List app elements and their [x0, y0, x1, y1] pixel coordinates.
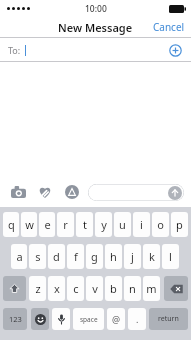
button[interactable]: e	[39, 212, 55, 237]
button[interactable]: Emoji	[31, 308, 49, 330]
button[interactable]: Backspace	[164, 276, 188, 301]
staticText: i	[140, 217, 143, 232]
staticText: e	[44, 217, 51, 232]
button[interactable]: y	[95, 212, 112, 237]
staticText: j	[131, 249, 134, 264]
button[interactable]: return	[149, 308, 188, 330]
button[interactable]: n	[124, 276, 141, 301]
staticText: return	[158, 314, 179, 324]
staticText: d	[53, 249, 60, 264]
button[interactable]: q	[3, 212, 19, 237]
staticText: l	[169, 249, 172, 264]
button[interactable]: Send	[88, 184, 184, 201]
button[interactable]: Dictation	[52, 308, 70, 330]
button[interactable]: t	[76, 212, 93, 237]
staticText: q	[8, 217, 15, 232]
staticText: u	[119, 217, 126, 232]
button[interactable]: g	[86, 244, 103, 269]
button[interactable]: Camera	[7, 181, 29, 203]
button[interactable]: u	[114, 212, 131, 237]
button[interactable]: z	[29, 276, 46, 301]
button[interactable]: c	[67, 276, 84, 301]
button[interactable]: f	[67, 244, 84, 269]
button[interactable]: i	[133, 212, 150, 237]
button[interactable]: b	[105, 276, 122, 301]
button[interactable]: r	[57, 212, 74, 237]
button[interactable]: Add contact	[165, 40, 185, 60]
button[interactable]: App Store	[61, 181, 83, 203]
staticText: New Message	[58, 20, 133, 35]
staticText: 123	[9, 314, 22, 324]
staticText: b	[110, 281, 117, 296]
button[interactable]: v	[86, 276, 103, 301]
button[interactable]: 123	[3, 308, 27, 330]
button[interactable]: Digital Touch	[34, 181, 56, 203]
staticText: w	[25, 217, 34, 232]
button[interactable]: x	[48, 276, 65, 301]
staticText: f	[74, 249, 78, 264]
staticText: r	[63, 217, 68, 232]
button[interactable]: Send	[168, 186, 182, 200]
button[interactable]: l	[162, 244, 179, 269]
staticText: g	[91, 249, 98, 264]
button[interactable]: h	[105, 244, 122, 269]
staticText: v	[92, 281, 98, 296]
button[interactable]: @	[107, 308, 125, 330]
staticText: n	[129, 281, 136, 296]
button[interactable]: Shift	[3, 276, 26, 301]
staticText: a	[16, 249, 23, 264]
button[interactable]: m	[143, 276, 160, 301]
staticText: @	[112, 313, 121, 325]
button[interactable]: p	[171, 212, 188, 237]
button[interactable]: k	[143, 244, 160, 269]
button[interactable]: w	[21, 212, 37, 237]
staticText: y	[101, 217, 107, 232]
staticText: s	[35, 249, 41, 264]
button[interactable]: space	[73, 308, 104, 330]
button[interactable]: Cancel	[147, 18, 191, 36]
staticText: k	[149, 249, 155, 264]
button[interactable]: a	[11, 244, 27, 269]
button[interactable]: .	[128, 308, 146, 330]
staticText: m	[146, 281, 157, 296]
staticText: c	[73, 281, 79, 296]
staticText: 10:00	[85, 3, 107, 15]
staticText: z	[35, 281, 41, 296]
button[interactable]: o	[152, 212, 169, 237]
staticText: o	[157, 217, 164, 232]
staticText: Cancel	[153, 20, 185, 34]
staticText: .	[136, 313, 139, 325]
staticText: p	[176, 217, 183, 232]
staticText: x	[54, 281, 60, 296]
staticText: space	[80, 315, 98, 324]
button[interactable]: s	[29, 244, 46, 269]
staticText: To:	[8, 44, 21, 56]
staticText: h	[110, 249, 117, 264]
button[interactable]: j	[124, 244, 141, 269]
button[interactable]: d	[48, 244, 65, 269]
staticText: t	[83, 217, 87, 232]
